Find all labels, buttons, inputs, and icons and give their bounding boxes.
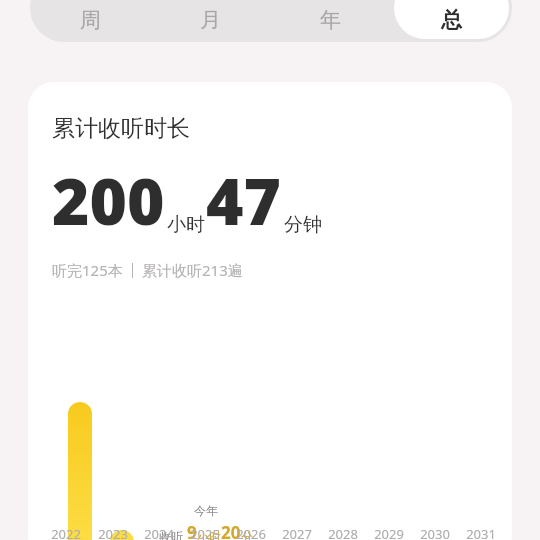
button[interactable]: 月 (153, 0, 267, 39)
staticText: 2023 (98, 525, 128, 540)
staticText: 总 (441, 7, 462, 33)
button[interactable]: 今年 (148, 493, 263, 540)
staticText: 听完125本 (52, 260, 123, 280)
staticText: 2026 (236, 525, 266, 540)
staticText: 2024 (144, 525, 174, 540)
staticText: 2022 (51, 525, 81, 540)
staticText: 2029 (374, 525, 404, 540)
staticText: 分钟 (284, 213, 322, 237)
button[interactable]: 累计收听时长 (28, 82, 512, 540)
button[interactable]: 总 (394, 0, 509, 39)
staticText: 分 (241, 529, 253, 540)
staticText: 收听 (159, 528, 187, 540)
staticText: 2030 (420, 525, 450, 540)
staticText: 周 (80, 7, 101, 33)
staticText: 2027 (282, 525, 312, 540)
staticText: 小时 (197, 529, 221, 540)
staticText: 今年 (194, 503, 218, 518)
staticText: 月 (200, 7, 221, 33)
staticText: 47 (206, 157, 282, 244)
staticText: 小时 (167, 213, 205, 237)
staticText: 2028 (328, 525, 358, 540)
button[interactable]: 年 (273, 0, 388, 39)
staticText: 20 (221, 521, 241, 540)
staticText: 9 (187, 521, 197, 540)
staticText: 2025 (190, 525, 220, 540)
staticText: 2031 (466, 525, 496, 540)
staticText: 累计收听213遍 (142, 260, 243, 280)
staticText: 累计收听时长 (52, 114, 190, 143)
staticText: 年 (320, 7, 341, 33)
staticText: 200 (52, 157, 165, 244)
button[interactable]: 周 (33, 0, 147, 39)
